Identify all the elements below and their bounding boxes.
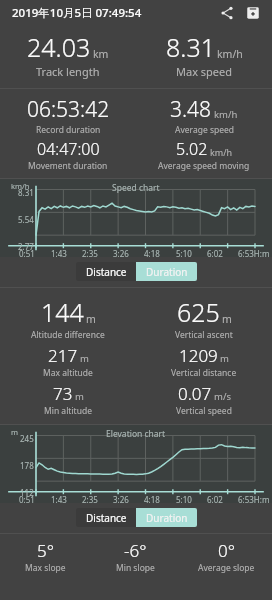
button[interactable]: Duration [136, 508, 197, 527]
staticText: Duration [146, 265, 188, 279]
button[interactable]: Distance [76, 262, 136, 281]
staticText: km [93, 47, 109, 61]
staticText: 3:26 [113, 494, 129, 505]
staticText: Vertical distance [171, 367, 237, 379]
staticText: 5:10 [176, 494, 192, 505]
staticText: Altitude difference [31, 329, 105, 341]
staticText: 3.48 [170, 95, 212, 124]
staticText: m [220, 352, 229, 365]
staticText: 8.31 [166, 30, 215, 64]
button[interactable]: Distance [76, 508, 136, 527]
staticText: km/h [11, 181, 30, 191]
staticText: 6:53H:m [238, 494, 270, 505]
staticText: 1:43 [51, 248, 67, 259]
staticText: 1:43 [51, 494, 67, 505]
staticText: m/s [214, 390, 231, 403]
staticText: 6:02 [207, 248, 223, 259]
staticText: 2:35 [82, 494, 98, 505]
staticText: Track length [36, 64, 100, 79]
staticText: Min altitude [44, 405, 92, 417]
staticText: 4:18 [144, 494, 160, 505]
staticText: 5.54 [18, 214, 34, 225]
staticText: 0.07 [178, 382, 212, 405]
staticText: m [86, 312, 96, 326]
staticText: Min slope [116, 562, 155, 574]
staticText: 178 [20, 460, 34, 471]
staticText: 245 [20, 433, 34, 444]
staticText: Average speed [175, 124, 234, 136]
staticText: 4:18 [144, 248, 160, 259]
staticText: 6:53H:m [238, 248, 270, 259]
staticText: Max slope [25, 562, 66, 574]
staticText: Vertical speed [176, 405, 232, 417]
staticText: Average speed moving [158, 160, 250, 172]
staticText: Distance [86, 511, 127, 525]
staticText: 2:35 [82, 248, 98, 259]
staticText: 24.03 [27, 30, 91, 64]
staticText: -6° [124, 539, 147, 562]
staticText: 6:02 [207, 494, 223, 505]
staticText: 5:10 [176, 248, 192, 259]
staticText: 0:51 [19, 248, 35, 259]
staticText: 0:51 [19, 494, 35, 505]
staticText: Duration [146, 511, 188, 525]
staticText: 0° [218, 539, 235, 562]
staticText: 217 [48, 344, 78, 367]
staticText: Max speed [176, 64, 233, 79]
staticText: Average slope [198, 562, 255, 574]
button[interactable]: Duration [136, 262, 197, 281]
staticText: km/h [217, 47, 243, 61]
staticText: 04:47:00 [37, 138, 100, 160]
staticText: km/h [210, 146, 233, 158]
staticText: Record duration [36, 124, 101, 136]
staticText: 3:26 [113, 248, 129, 259]
staticText: km/h [214, 108, 238, 121]
staticText: m [222, 312, 232, 326]
staticText: Movement duration [28, 160, 108, 172]
staticText: m [80, 352, 89, 365]
staticText: 73 [53, 382, 73, 405]
staticText: 625 [177, 295, 220, 329]
staticText: Elevation chart [106, 428, 166, 440]
staticText: m [11, 427, 19, 437]
staticText: Distance [86, 265, 127, 279]
staticText: 144 [41, 295, 84, 329]
staticText: Max altitude [43, 367, 93, 379]
button[interactable]: Save [242, 2, 264, 24]
staticText: 5° [37, 539, 54, 562]
staticText: Speed chart [112, 182, 160, 194]
button[interactable]: Share [216, 2, 238, 24]
staticText: 8.31 [18, 187, 34, 198]
staticText: 06:53:42 [27, 95, 110, 124]
staticText: 112 [20, 487, 34, 498]
staticText: 2.77 [18, 241, 34, 252]
staticText: 5.02 [176, 138, 208, 160]
staticText: Vertical ascent [175, 329, 233, 341]
staticText: 1209 [179, 344, 218, 367]
staticText: 2019年10月5日 07:49:54 [12, 5, 142, 21]
staticText: m [75, 390, 84, 403]
